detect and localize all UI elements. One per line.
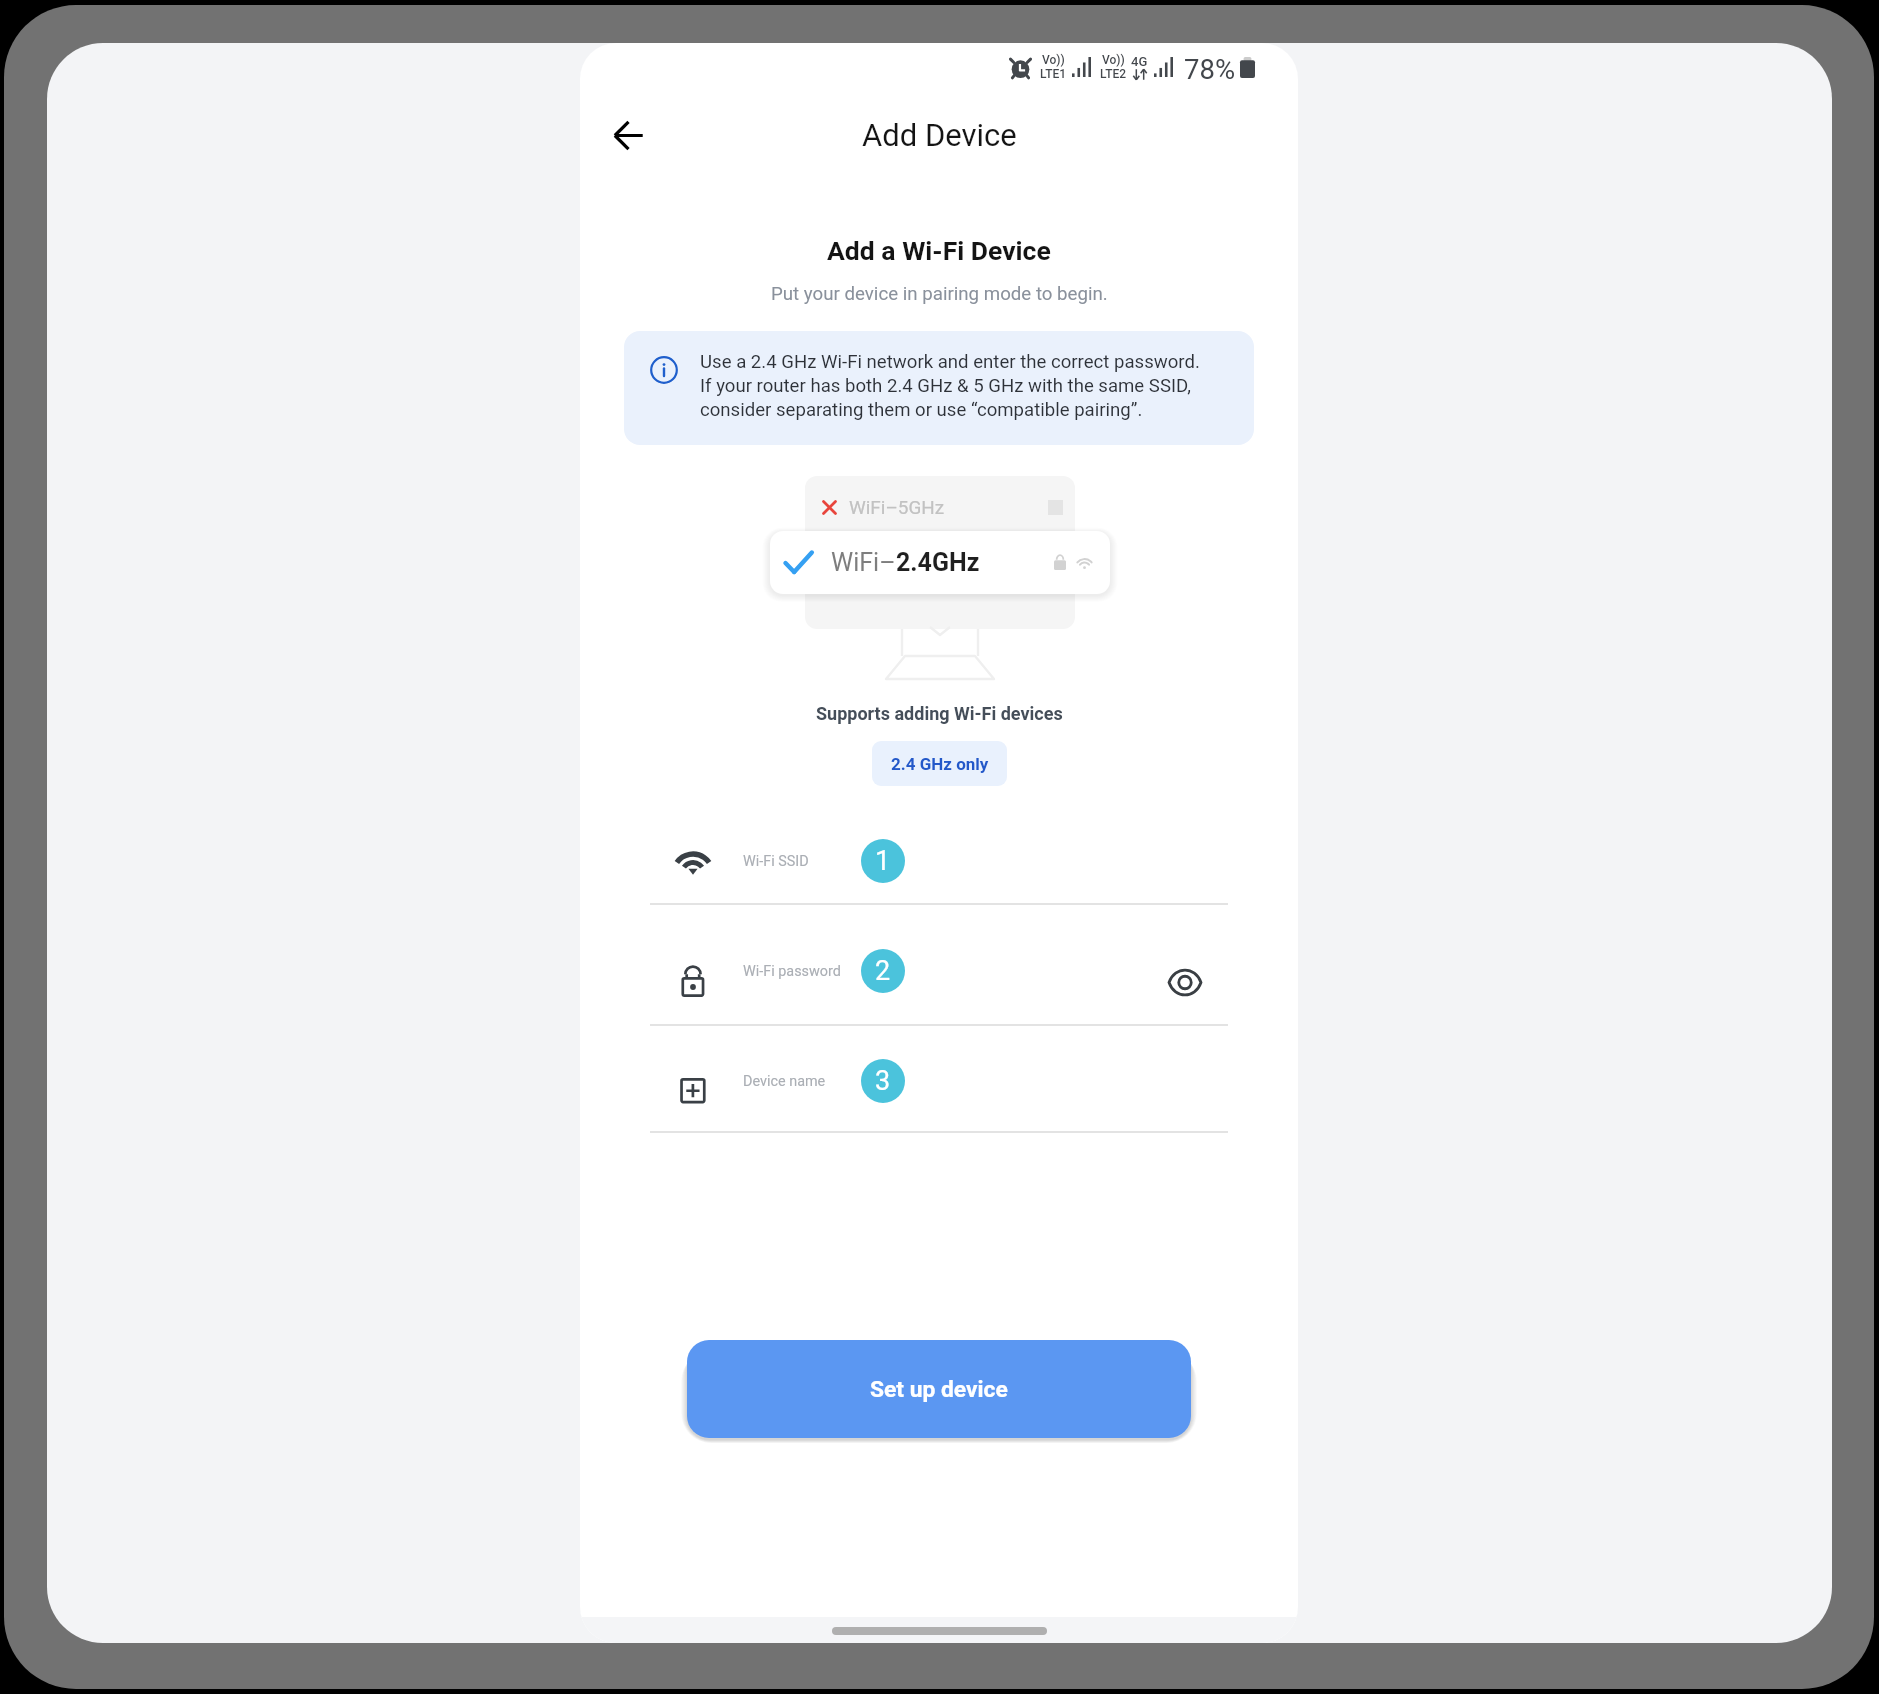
staticText: 2.4 GHz only xyxy=(891,754,989,774)
staticText: 2.4GHz xyxy=(896,548,980,577)
button[interactable]: Set up device xyxy=(687,1340,1191,1438)
staticText: 3 xyxy=(875,1065,891,1097)
staticText: Vo)) xyxy=(1042,53,1065,67)
button[interactable]: Device name xyxy=(650,1038,1228,1124)
staticText: 78% xyxy=(1184,53,1236,81)
staticText: Vo)) xyxy=(1102,53,1125,67)
staticText: Use a 2.4 GHz Wi-Fi network and enter th… xyxy=(700,351,1220,421)
staticText: 2 xyxy=(875,955,891,987)
staticText: Supports adding Wi-Fi devices xyxy=(816,703,1063,724)
staticText: WiFi–5GHz xyxy=(849,496,945,518)
staticText: Put your device in pairing mode to begin… xyxy=(771,283,1108,305)
button[interactable]: Wi-Fi password xyxy=(650,928,1228,1014)
staticText: LTE2 xyxy=(1100,67,1127,81)
button[interactable]: Show password xyxy=(1157,958,1213,1006)
staticText: Add Device xyxy=(862,117,1017,153)
staticText: 1 xyxy=(875,845,891,877)
staticText: 4G xyxy=(1131,54,1148,69)
staticText: Set up device xyxy=(870,1376,1008,1403)
button[interactable] xyxy=(770,531,1110,594)
staticText: Add a Wi-Fi Device xyxy=(827,235,1051,266)
staticText: LTE1 xyxy=(1040,67,1067,81)
staticText: Device name xyxy=(743,1073,826,1090)
staticText: Wi-Fi SSID xyxy=(743,853,809,870)
staticText: WiFi– xyxy=(831,548,896,577)
staticText: Wi-Fi password xyxy=(743,963,841,980)
button[interactable]: Back xyxy=(601,108,655,162)
button[interactable]: 2.4 GHz only xyxy=(872,741,1007,786)
button[interactable]: Wi-Fi SSID xyxy=(650,818,1228,904)
